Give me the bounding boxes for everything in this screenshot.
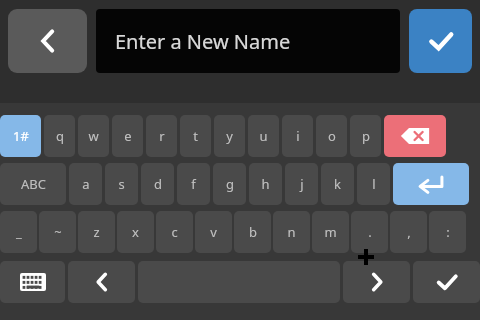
staticText: Enter a New Name bbox=[115, 28, 291, 55]
staticText: ~ bbox=[54, 223, 62, 241]
button[interactable]: Accept bbox=[413, 261, 480, 303]
button[interactable]: k bbox=[321, 163, 354, 205]
staticText: z bbox=[93, 223, 100, 241]
button[interactable]: _ bbox=[0, 211, 37, 253]
button[interactable]: a bbox=[69, 163, 102, 205]
button[interactable]: m bbox=[312, 211, 349, 253]
button[interactable]: r bbox=[146, 115, 177, 157]
button[interactable]: f bbox=[177, 163, 210, 205]
staticText: j bbox=[300, 175, 304, 193]
button[interactable]: : bbox=[429, 211, 466, 253]
button[interactable]: w bbox=[78, 115, 109, 157]
button[interactable]: , bbox=[390, 211, 427, 253]
button[interactable]: . bbox=[351, 211, 388, 253]
staticText: s bbox=[118, 175, 125, 193]
button[interactable]: c bbox=[156, 211, 193, 253]
button[interactable]: Enter bbox=[393, 163, 469, 205]
button[interactable]: u bbox=[248, 115, 279, 157]
button[interactable]: z bbox=[78, 211, 115, 253]
staticText: r bbox=[159, 127, 165, 145]
button[interactable]: o bbox=[316, 115, 347, 157]
button[interactable]: v bbox=[195, 211, 232, 253]
staticText: p bbox=[362, 127, 370, 145]
button[interactable]: Keyboard settings bbox=[0, 261, 65, 303]
staticText: u bbox=[259, 127, 268, 145]
staticText: w bbox=[88, 127, 99, 145]
button[interactable]: t bbox=[180, 115, 211, 157]
staticText: t bbox=[193, 127, 198, 145]
button[interactable]: e bbox=[112, 115, 143, 157]
button[interactable]: i bbox=[282, 115, 313, 157]
staticText: q bbox=[56, 127, 64, 145]
button[interactable]: g bbox=[213, 163, 246, 205]
staticText: ABC bbox=[21, 175, 46, 193]
button[interactable]: ABC bbox=[0, 163, 66, 205]
staticText: o bbox=[328, 127, 336, 145]
button[interactable]: p bbox=[350, 115, 381, 157]
button[interactable]: x bbox=[117, 211, 154, 253]
staticText: . bbox=[368, 223, 372, 241]
staticText: g bbox=[226, 175, 234, 193]
button[interactable]: b bbox=[234, 211, 271, 253]
staticText: c bbox=[171, 223, 178, 241]
button[interactable]: h bbox=[249, 163, 282, 205]
staticText: d bbox=[154, 175, 162, 193]
button[interactable]: Confirm bbox=[409, 9, 472, 73]
button[interactable]: j bbox=[285, 163, 318, 205]
button[interactable]: s bbox=[105, 163, 138, 205]
staticText: f bbox=[191, 175, 196, 193]
staticText: k bbox=[334, 175, 341, 193]
staticText: y bbox=[226, 127, 233, 145]
staticText: m bbox=[324, 223, 337, 241]
button[interactable]: n bbox=[273, 211, 310, 253]
button[interactable]: Backspace bbox=[384, 115, 446, 157]
staticText: l bbox=[372, 175, 376, 193]
staticText: n bbox=[287, 223, 296, 241]
button[interactable]: Back bbox=[8, 9, 87, 73]
button[interactable]: Move right bbox=[343, 261, 410, 303]
staticText: v bbox=[210, 223, 217, 241]
button[interactable]: ~ bbox=[39, 211, 76, 253]
staticText: i bbox=[296, 127, 300, 145]
button[interactable]: Move left bbox=[68, 261, 135, 303]
staticText: , bbox=[407, 223, 411, 241]
staticText: e bbox=[124, 127, 132, 145]
button[interactable]: Enter a New Name bbox=[96, 9, 400, 73]
button[interactable]: d bbox=[141, 163, 174, 205]
button[interactable]: q bbox=[44, 115, 75, 157]
button[interactable]: 1# bbox=[0, 115, 41, 157]
staticText: x bbox=[132, 223, 139, 241]
staticText: 1# bbox=[13, 127, 29, 145]
staticText: a bbox=[82, 175, 90, 193]
staticText: b bbox=[249, 223, 257, 241]
staticText: _ bbox=[16, 223, 22, 241]
staticText: : bbox=[446, 223, 450, 241]
staticText: h bbox=[261, 175, 270, 193]
button[interactable]: l bbox=[357, 163, 390, 205]
button[interactable]: y bbox=[214, 115, 245, 157]
